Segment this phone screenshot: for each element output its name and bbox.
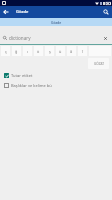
- button[interactable]: Clear: [101, 34, 110, 43]
- button[interactable]: â: [67, 46, 76, 56]
- staticText: ç: [5, 49, 7, 54]
- staticText: ğ: [15, 49, 18, 54]
- staticText: ü: [59, 49, 62, 54]
- staticText: Başlıklar ve kelime bü: [11, 83, 52, 88]
- button[interactable]: Search: [99, 6, 112, 18]
- button[interactable]: ı: [23, 46, 32, 56]
- button[interactable]: GÖZAT: [88, 58, 109, 69]
- button[interactable]: ş: [45, 46, 54, 56]
- staticText: Gözde: [51, 20, 62, 25]
- button[interactable]: ğ: [12, 46, 21, 56]
- staticText: ş: [49, 49, 51, 54]
- button[interactable]: Gözde: [0, 18, 112, 26]
- staticText: ı: [27, 49, 28, 54]
- staticText: dictionary: [9, 35, 31, 41]
- staticText: Gözde: [16, 9, 29, 15]
- staticText: â: [70, 49, 73, 54]
- staticText: GÖZAT: [94, 62, 104, 66]
- staticText: ö: [37, 49, 40, 54]
- button[interactable]: Tutar etiket: [0, 70, 112, 80]
- button[interactable]: Başlıklar ve kelime bü: [0, 80, 112, 90]
- button[interactable]: î: [78, 46, 87, 56]
- button[interactable]: ö: [34, 46, 43, 56]
- staticText: Tutar etiket: [11, 73, 33, 78]
- button[interactable]: ç: [1, 46, 10, 56]
- button[interactable]: ü: [56, 46, 65, 56]
- button[interactable]: Back: [0, 6, 12, 18]
- staticText: î: [82, 49, 83, 54]
